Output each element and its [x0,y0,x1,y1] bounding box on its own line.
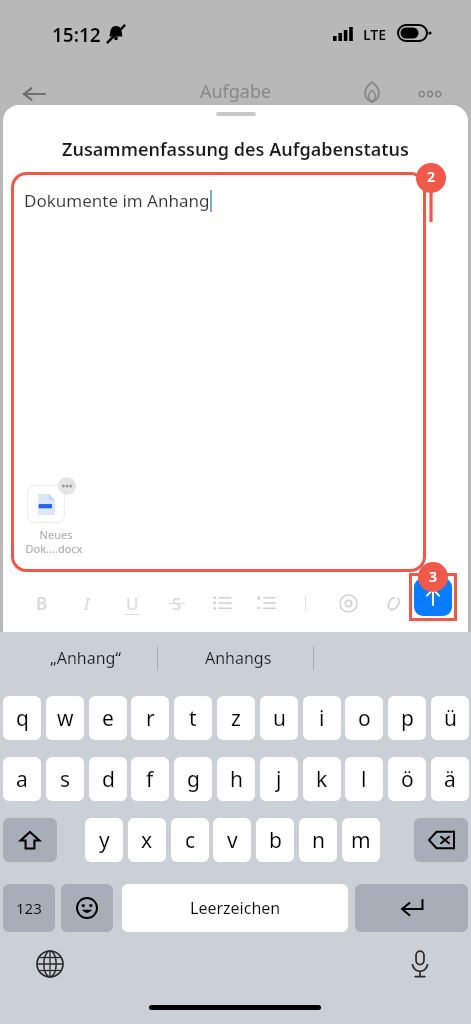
button[interactable]: Return [355,884,468,932]
button[interactable]: o [345,696,383,740]
staticText: Zusammenfassung des Aufgabenstatus [3,137,468,162]
button[interactable]: a [3,757,41,801]
staticText: ä [444,765,456,794]
button[interactable]: Shift [3,818,57,862]
button[interactable]: l [345,757,383,801]
staticText: c [185,826,196,855]
staticText: „Anhang“ [50,647,122,669]
staticText: k [316,765,328,794]
button[interactable]: More options [412,76,448,112]
button[interactable]: S [160,586,194,620]
staticText: g [187,765,200,794]
button[interactable]: Anhangs [164,632,312,684]
staticText: l [361,765,367,794]
button[interactable]: z [217,696,255,740]
staticText: s [60,765,71,794]
staticText: LTE [363,25,387,44]
button[interactable]: j [260,757,298,801]
button[interactable]: y [85,818,123,862]
button[interactable]: Send [414,578,452,616]
button[interactable]: b [256,818,294,862]
button[interactable]: „Anhang“ [14,632,157,684]
button[interactable]: q [3,696,41,740]
staticText: Dokumente im Anhang [24,189,210,212]
staticText: n [312,826,325,855]
button[interactable]: t [174,696,212,740]
button[interactable]: Urgent [356,76,388,108]
button[interactable]: Mention [331,586,365,620]
staticText: e [102,704,114,733]
staticText: ö [401,765,414,794]
button[interactable]: w [46,696,84,740]
staticText: u [273,704,286,733]
button[interactable]: 123 [3,884,55,932]
staticText: ü [444,704,457,733]
staticText: h [230,765,243,794]
staticText: y [99,826,110,855]
button[interactable]: Attach file [375,586,409,620]
staticText: a [16,765,28,794]
button[interactable]: d [89,757,127,801]
staticText: 3 [417,567,449,586]
button[interactable]: n [299,818,337,862]
staticText: I [84,592,90,615]
staticText: S [172,592,182,615]
staticText: Dok....docx [19,541,89,556]
button[interactable]: f [131,757,169,801]
button[interactable]: Leerzeichen [122,884,348,932]
button[interactable]: Numbered list [249,586,283,620]
button[interactable]: I [70,586,104,620]
button[interactable]: ä [431,757,469,801]
staticText: r [146,704,155,733]
button[interactable]: Dokumente im Anhang [11,172,426,572]
staticText: Neues [25,527,87,542]
button[interactable]: p [388,696,426,740]
staticText: w [57,704,74,733]
staticText: q [16,704,29,733]
button[interactable]: Emoji [61,884,113,932]
staticText: 123 [16,898,42,918]
staticText: 15:12 [52,22,101,48]
button[interactable]: g [174,757,212,801]
button[interactable]: s [46,757,84,801]
button[interactable]: x [128,818,166,862]
button[interactable]: Backspace [414,818,468,862]
staticText: f [146,765,154,794]
button[interactable]: h [217,757,255,801]
staticText: Aufgabe [0,79,471,104]
staticText: o [358,704,371,733]
button[interactable]: c [171,818,209,862]
button[interactable] [27,485,65,523]
staticText: t [189,704,197,733]
staticText: U [126,592,139,615]
button[interactable]: B [25,586,59,620]
button[interactable]: e [89,696,127,740]
staticText: Anhangs [205,647,272,669]
button[interactable]: u [260,696,298,740]
staticText: 2 [414,167,448,186]
staticText: i [319,704,325,733]
button[interactable]: Dictate [398,942,442,986]
button[interactable]: k [303,757,341,801]
button[interactable]: ü [431,696,469,740]
button[interactable]: Bulleted list [205,586,239,620]
button[interactable]: r [131,696,169,740]
staticText: p [401,704,414,733]
staticText: B [36,592,48,615]
staticText: Leerzeichen [190,897,281,919]
staticText: d [102,765,115,794]
button[interactable]: Change keyboard [28,942,72,986]
staticText: v [227,826,238,855]
staticText: m [351,826,371,855]
button[interactable]: U [115,586,149,620]
button[interactable]: m [342,818,380,862]
button[interactable]: Back [16,76,52,112]
button[interactable]: i [303,696,341,740]
staticText: z [231,704,241,733]
staticText: j [276,765,282,794]
staticText: x [141,826,153,855]
button[interactable]: ö [388,757,426,801]
button[interactable]: v [213,818,251,862]
staticText: b [269,826,282,855]
